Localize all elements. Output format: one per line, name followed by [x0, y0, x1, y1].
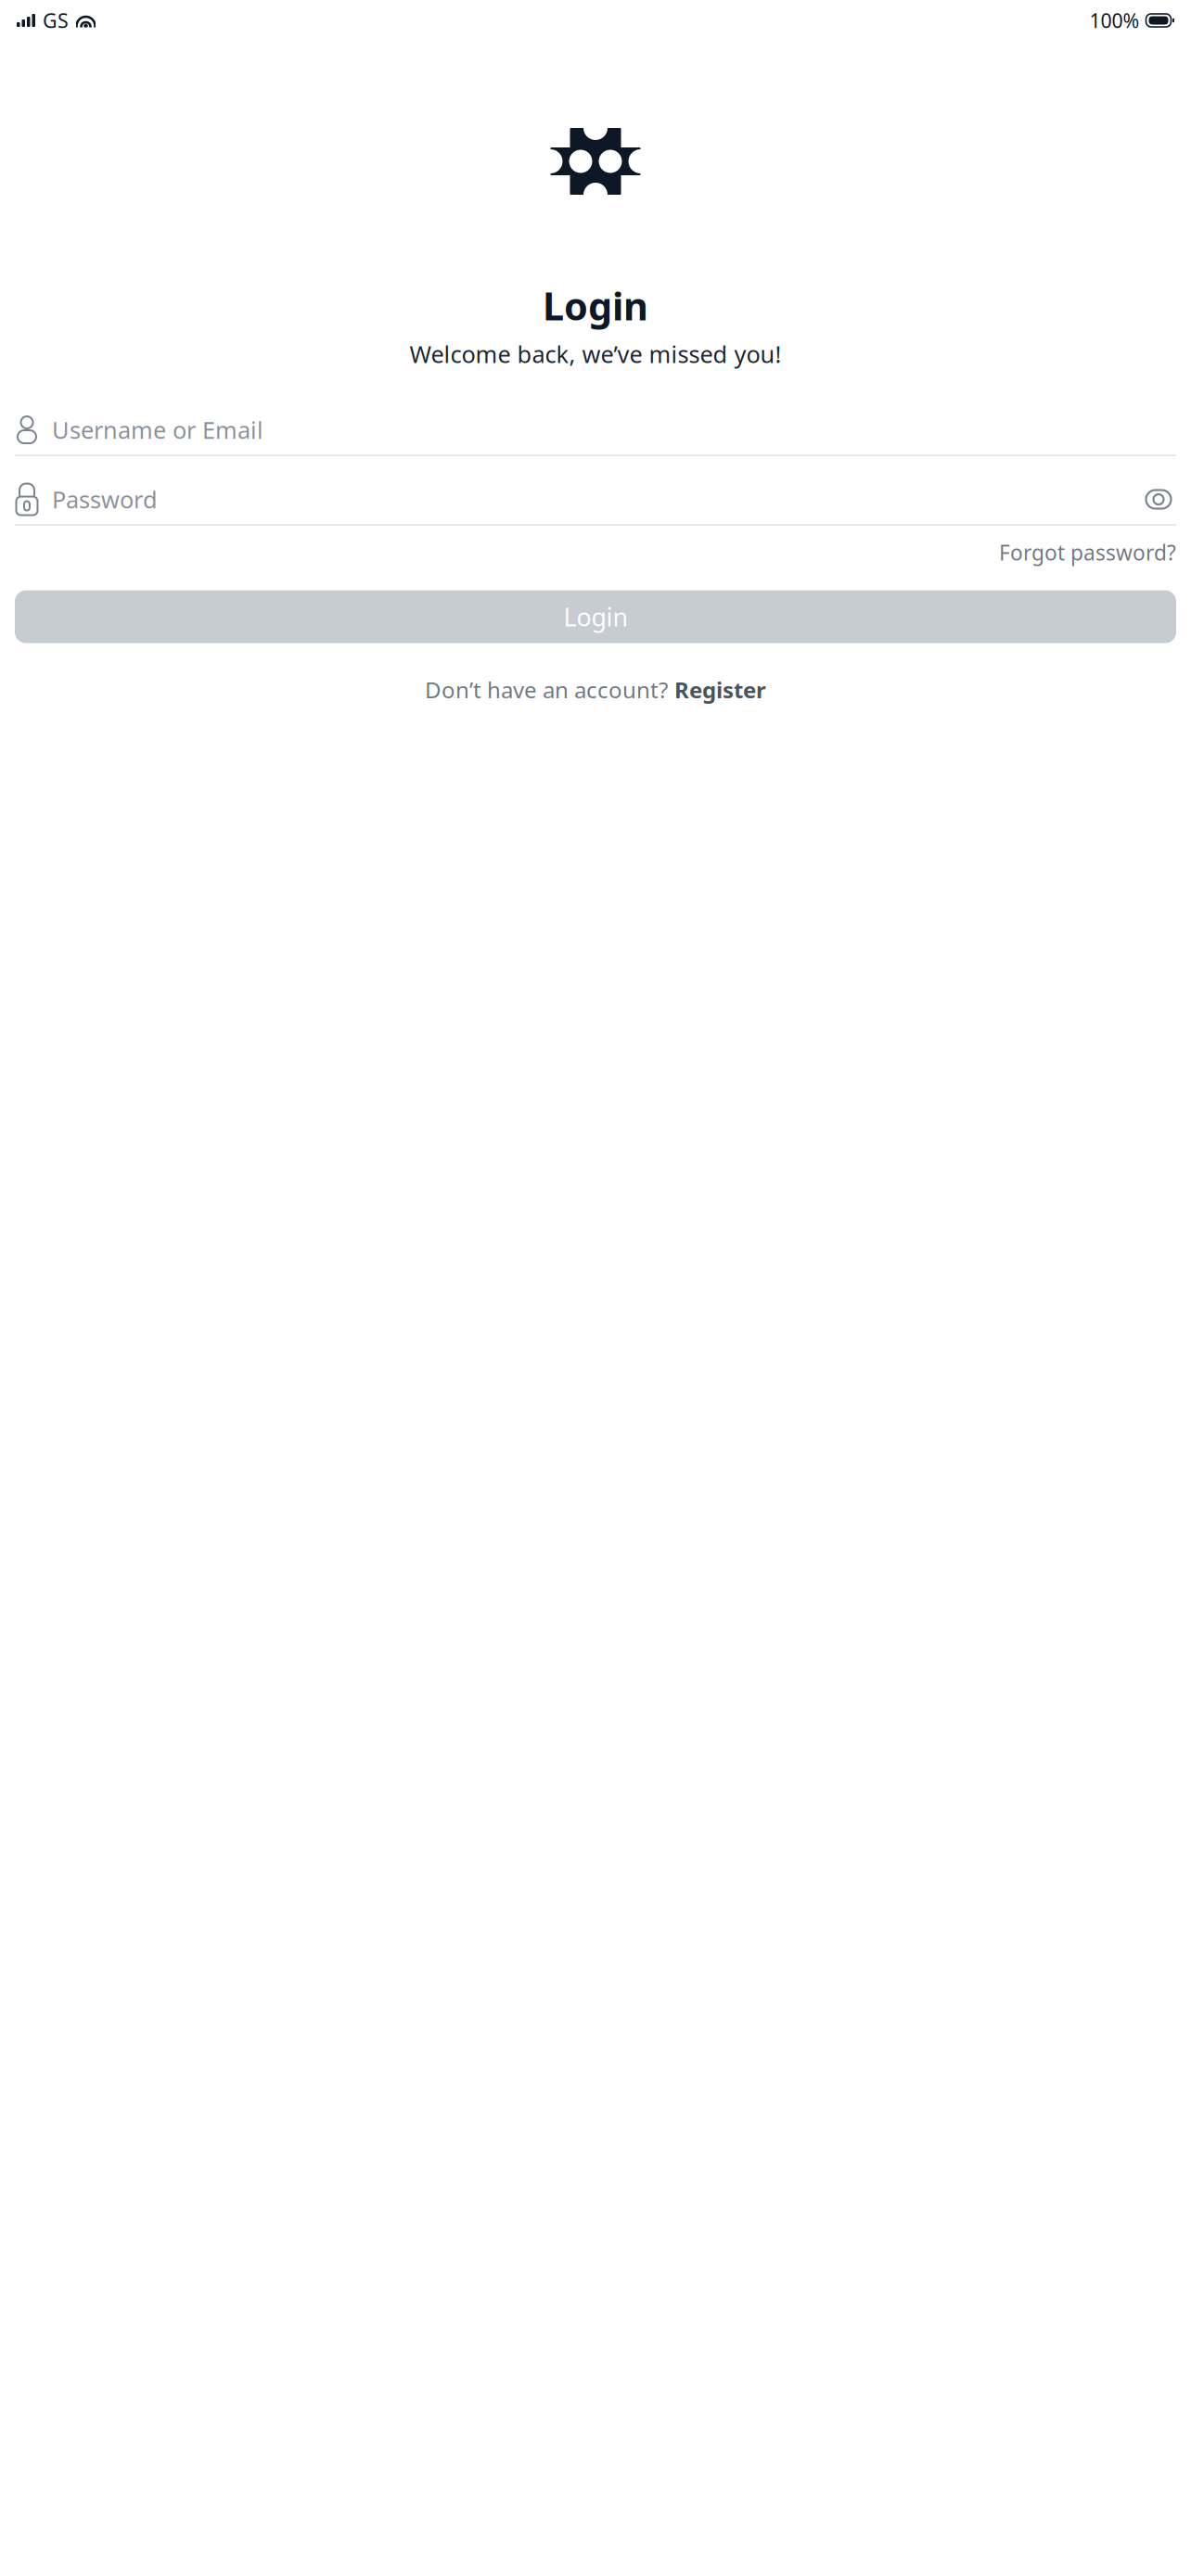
staticText: Login: [563, 600, 628, 633]
staticText: Register: [674, 675, 766, 704]
staticText: Password: [52, 484, 158, 515]
staticText: Welcome back, we’ve missed you!: [410, 338, 781, 370]
button[interactable]: Login: [15, 590, 1176, 643]
staticText: Username or Email: [52, 414, 263, 445]
staticText: 100%: [1089, 7, 1140, 33]
staticText: Login: [543, 280, 648, 331]
staticText: Don’t have an account?: [425, 675, 668, 704]
button[interactable]: Don’t have an account?: [425, 669, 766, 710]
button[interactable]: Forgot password?: [999, 533, 1176, 572]
button[interactable]: Show password: [1141, 481, 1176, 518]
staticText: Forgot password?: [999, 538, 1176, 566]
staticText: GS: [43, 7, 69, 33]
